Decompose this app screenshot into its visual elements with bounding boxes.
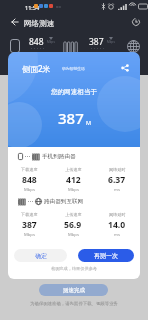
staticText: 路由器到互联网	[44, 198, 84, 205]
staticText: 确定	[35, 252, 47, 260]
button[interactable]: 测速完成	[39, 284, 108, 296]
staticText: 为确保测速准确，请先暂停下载、视频等业务	[0, 301, 148, 307]
staticText: 上传速度	[65, 212, 82, 217]
staticText: 下载速度	[21, 167, 38, 172]
button[interactable]: 分享	[118, 61, 132, 75]
button[interactable]: 返回	[8, 15, 22, 29]
staticText: 11:54	[25, 4, 40, 11]
staticText: 412	[66, 174, 81, 186]
staticText: 14.0	[108, 219, 126, 231]
staticText: Mbps	[47, 40, 55, 44]
staticText: 387	[58, 108, 84, 128]
staticText: 848	[22, 174, 37, 186]
staticText: 网络延时	[109, 167, 126, 172]
staticText: 侧面2米	[22, 63, 51, 74]
staticText: 网络测速	[24, 19, 55, 29]
staticText: 上传速度	[65, 167, 82, 172]
staticText: 您的网速相当于	[8, 88, 140, 96]
staticText: 848	[29, 36, 44, 48]
staticText: 387	[89, 36, 104, 48]
staticText: 测速完成	[63, 287, 85, 294]
staticText: 网络延时	[109, 212, 126, 217]
staticText: M	[86, 119, 91, 126]
staticText: 387	[22, 219, 37, 231]
staticText: 6.37	[108, 174, 126, 186]
staticText: 再测一次	[94, 252, 118, 260]
staticText: 检测完成，结果仅供参考	[0, 266, 148, 271]
staticText: Mbps	[24, 232, 35, 238]
staticText: oo	[56, 4, 61, 9]
button[interactable]: 再测一次	[78, 249, 134, 262]
button[interactable]: 确定	[14, 249, 67, 262]
staticText: 56.9	[64, 219, 82, 231]
staticText: Mbps	[107, 40, 115, 44]
staticText: ms	[114, 232, 120, 238]
staticText: Mbps	[24, 187, 35, 193]
staticText: 下载速度	[21, 212, 38, 217]
button[interactable]: 历史记录	[130, 16, 141, 27]
staticText: 华为智慧生活	[62, 66, 85, 71]
staticText: Mbps	[68, 187, 79, 193]
staticText: Mbps	[68, 232, 79, 238]
staticText: 手机到路由器	[42, 153, 76, 160]
staticText: ms	[114, 187, 120, 193]
